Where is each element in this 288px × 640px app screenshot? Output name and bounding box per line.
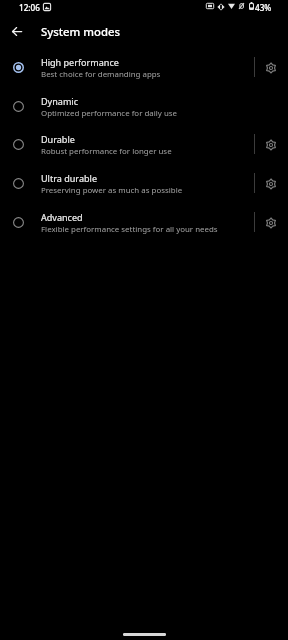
button[interactable]: Durable	[0, 125, 288, 164]
button[interactable]: High performance	[0, 48, 288, 87]
button[interactable]: Settings	[256, 203, 285, 242]
button[interactable]: Ultra durable	[0, 164, 288, 203]
staticText: High performance	[41, 56, 119, 68]
button[interactable]: Settings	[256, 48, 285, 87]
staticText: Optimized performance for daily use	[41, 108, 177, 119]
staticText: Durable	[41, 133, 75, 145]
button[interactable]: Settings	[256, 164, 285, 203]
staticText: System modes	[41, 24, 121, 39]
staticText: 12:06	[19, 2, 40, 13]
staticText: Flexible performance settings for all yo…	[41, 224, 218, 235]
button[interactable]: Settings	[256, 125, 285, 164]
button[interactable]: Advanced	[0, 203, 288, 242]
staticText: Preserving power as much as possible	[41, 185, 183, 196]
button[interactable]: Back	[3, 17, 31, 45]
staticText: Advanced	[41, 211, 83, 223]
staticText: Robust performance for longer use	[41, 146, 172, 157]
staticText: Best choice for demanding apps	[41, 69, 161, 80]
staticText: Dynamic	[41, 95, 79, 107]
button[interactable]: Dynamic	[0, 87, 288, 126]
staticText: 43%	[255, 2, 272, 13]
staticText: Ultra durable	[41, 172, 97, 184]
